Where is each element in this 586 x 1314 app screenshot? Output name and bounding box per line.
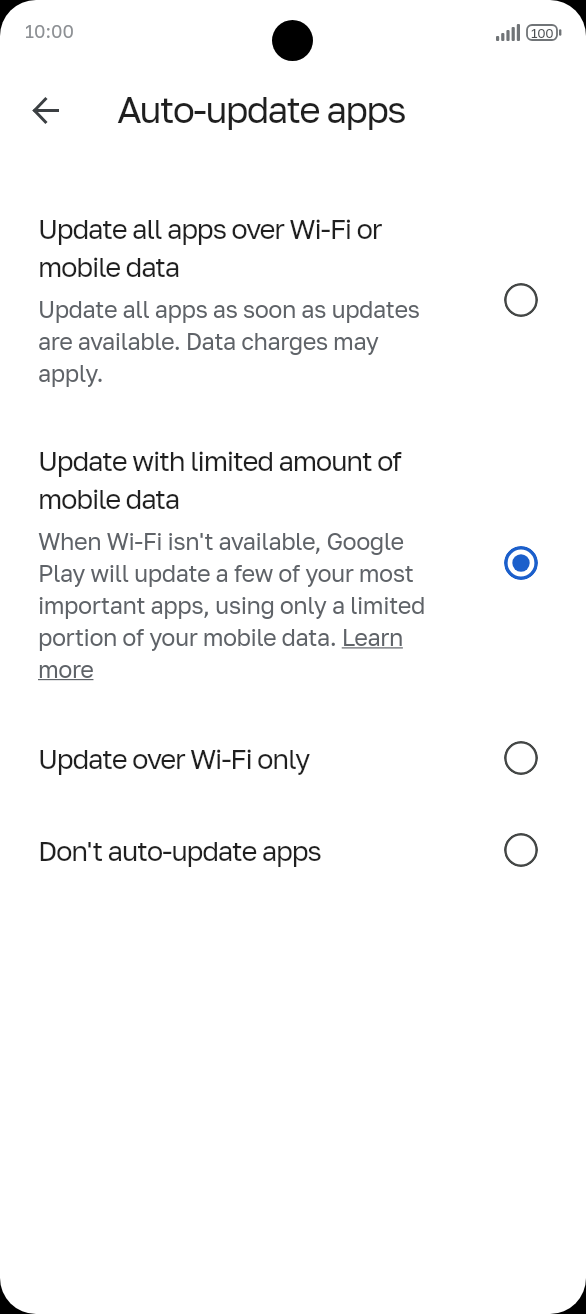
button[interactable]	[504, 833, 538, 867]
staticText: Auto-update apps	[117, 87, 405, 131]
button[interactable]	[504, 283, 538, 317]
button[interactable]	[504, 741, 538, 775]
button[interactable]: Update all apps over Wi-Fi or mobile dat…	[38, 212, 428, 387]
button[interactable]: Update over Wi-Fi only	[38, 736, 428, 780]
button[interactable]: Update with limited amount of mobile dat…	[38, 444, 428, 683]
button[interactable]: Don't auto-update apps	[38, 828, 428, 872]
staticText: Update with limited amount of mobile dat…	[38, 444, 428, 515]
staticText: 100	[531, 25, 554, 41]
staticText: 10:00	[25, 20, 74, 42]
button[interactable]: Back	[22, 86, 70, 134]
staticText: When Wi-Fi isn't available, Google Play …	[38, 527, 428, 683]
staticText: Update over Wi-Fi only	[38, 742, 310, 775]
button[interactable]	[504, 546, 538, 580]
staticText: Update all apps as soon as updates are a…	[38, 295, 428, 387]
staticText: Update all apps over Wi-Fi or mobile dat…	[38, 212, 428, 283]
staticText: Don't auto-update apps	[38, 834, 321, 867]
